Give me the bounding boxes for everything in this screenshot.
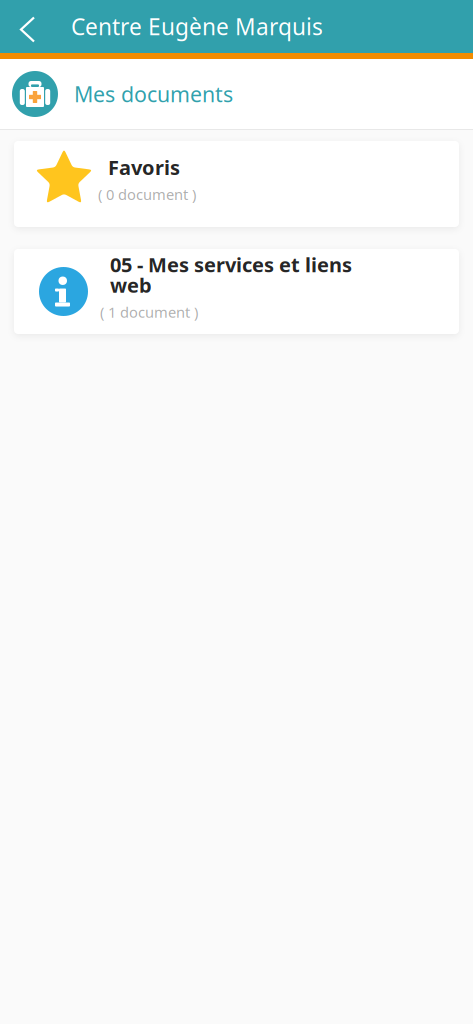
staticText: ( 0 document ) bbox=[98, 184, 196, 204]
staticText: Centre Eugène Marquis bbox=[71, 11, 323, 41]
staticText: 05 - Mes services et liens web bbox=[110, 251, 352, 298]
staticText: Favoris bbox=[108, 154, 180, 181]
button[interactable]: Favoris bbox=[14, 141, 459, 227]
staticText: Mes documents bbox=[74, 80, 233, 108]
button[interactable]: Back bbox=[0, 0, 53, 53]
staticText: ( 1 document ) bbox=[100, 302, 198, 322]
button[interactable]: 05 - Mes services et liens web bbox=[14, 249, 459, 334]
